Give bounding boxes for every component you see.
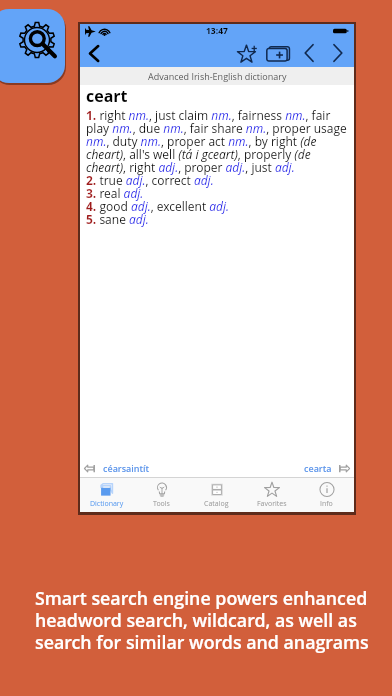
button[interactable]: Back	[82, 41, 106, 65]
button[interactable]: New card	[263, 41, 293, 65]
staticText: 1. right nm., just claim nm., fairness n…	[86, 107, 350, 227]
staticText: ceart	[86, 85, 128, 107]
button[interactable]: Previous entry	[301, 41, 316, 65]
button[interactable]: Info	[299, 478, 354, 512]
button[interactable]: cearta	[304, 462, 350, 474]
button[interactable]: Add to favorites	[235, 41, 259, 65]
button[interactable]: Tools	[134, 478, 189, 512]
staticText: Tools	[153, 499, 170, 509]
staticText: Favorites	[257, 499, 287, 509]
button[interactable]: Dictionary	[80, 478, 134, 512]
staticText: Info	[320, 499, 333, 509]
button[interactable]: Dictionary app icon	[0, 9, 65, 83]
staticText: Advanced Irish-English dictionary	[148, 70, 287, 82]
button[interactable]: Next entry	[330, 41, 345, 65]
staticText: cearta	[304, 462, 332, 474]
staticText: Dictionary	[90, 499, 124, 509]
staticText: Catalog	[204, 499, 229, 509]
button[interactable]: céarsaintít	[84, 462, 150, 474]
button[interactable]: Catalog	[189, 478, 244, 512]
staticText: Smart search engine powers enhanced head…	[35, 586, 376, 654]
staticText: 13:47	[206, 25, 228, 37]
button[interactable]: Favorites	[244, 478, 299, 512]
staticText: céarsaintít	[103, 462, 150, 474]
